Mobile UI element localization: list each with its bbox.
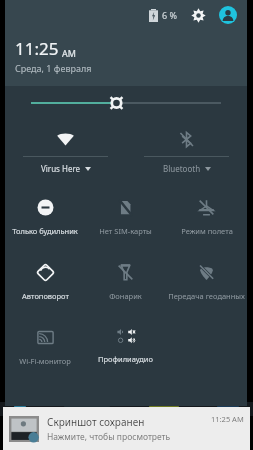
button[interactable]: Только будильник: [5, 186, 85, 251]
button[interactable]: Brightness: [5, 86, 247, 120]
staticText: Нажмите, чтобы просмотреть: [47, 431, 171, 443]
button[interactable]: Нет SIM-карты: [85, 186, 166, 251]
button[interactable]: Скриншот сохранен: [3, 407, 250, 450]
staticText: Только будильник: [12, 226, 78, 236]
staticText: Передача геоданных: [168, 291, 245, 301]
button[interactable]: Автоповорот: [5, 251, 85, 316]
button[interactable]: Режим полета: [166, 186, 247, 251]
button[interactable]: Wi-Fi монитор: [5, 316, 85, 378]
button[interactable]: Фонарик: [85, 251, 166, 316]
staticText: Среда, 1 февраля: [15, 62, 92, 74]
staticText: Bluetooth: [163, 163, 201, 174]
staticText: Фонарик: [109, 291, 142, 301]
button[interactable]: Settings: [187, 4, 209, 26]
staticText: Virus Here: [41, 163, 81, 174]
button[interactable]: Wi-Fi: [5, 122, 126, 180]
staticText: Автоповорот: [22, 291, 69, 301]
staticText: Профилиаудио: [98, 354, 153, 364]
staticText: 6 %: [162, 9, 177, 21]
staticText: Нет SIM-карты: [99, 226, 152, 236]
staticText: Скриншот сохранен: [47, 415, 145, 429]
button[interactable]: User profile: [217, 4, 239, 26]
button[interactable]: Профиль аудио: [85, 316, 166, 378]
staticText: AM: [62, 47, 76, 59]
button[interactable]: Передача геоданных: [166, 251, 247, 316]
staticText: 11:25 AM: [211, 414, 244, 424]
button[interactable]: Bluetooth: [126, 122, 247, 180]
staticText: Wi-Fi-монитор: [19, 356, 71, 366]
staticText: 11:25: [15, 37, 59, 60]
staticText: Режим полета: [181, 226, 233, 236]
